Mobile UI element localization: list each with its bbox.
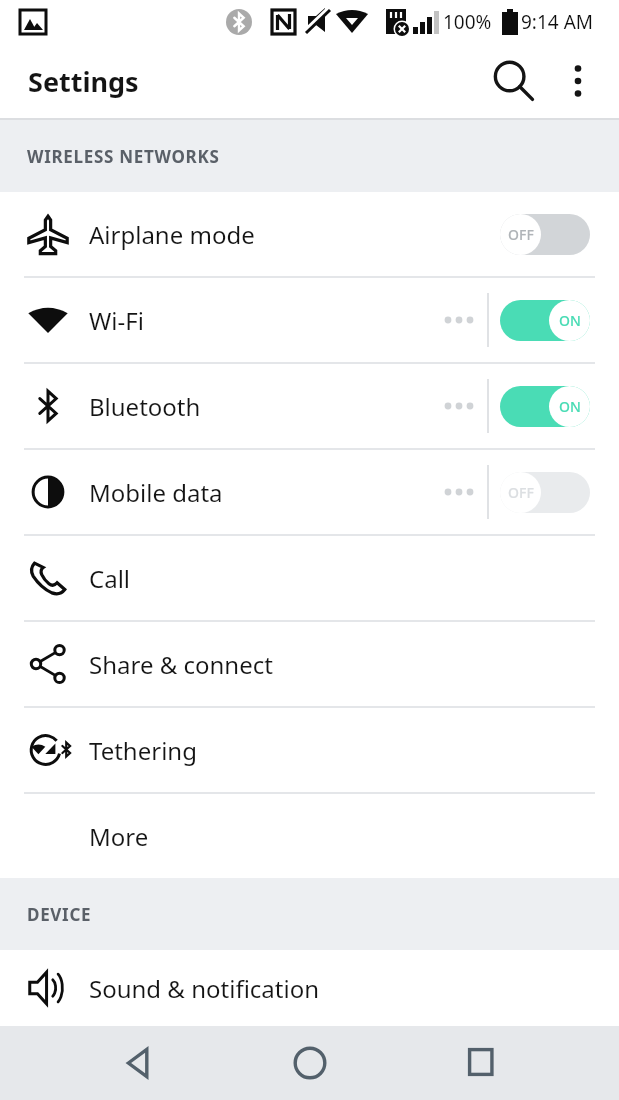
button[interactable]: More (0, 794, 619, 878)
staticText: Wi-Fi (89, 304, 144, 337)
staticText: OFF (508, 225, 534, 244)
staticText: Sound & notification (89, 972, 320, 1005)
staticText: Mobile data (89, 476, 223, 509)
staticText: 100% (443, 9, 492, 35)
button[interactable]: Sound & notification (0, 950, 619, 1026)
button[interactable]: Mobile data (0, 450, 619, 534)
button[interactable]: Recent apps (448, 1030, 514, 1096)
button[interactable]: Home (277, 1030, 343, 1096)
button[interactable]: Search (485, 53, 541, 109)
staticText: More (89, 820, 149, 853)
button[interactable]: ON (500, 386, 590, 427)
button[interactable]: ON (500, 300, 590, 341)
staticText: Airplane mode (89, 218, 255, 251)
staticText: Tethering (89, 734, 197, 767)
button[interactable]: OFF (500, 472, 590, 513)
staticText: 9:14 AM (521, 9, 594, 35)
staticText: Bluetooth (89, 390, 201, 423)
button[interactable]: Share & connect (0, 622, 619, 706)
button[interactable]: Tethering (0, 708, 619, 792)
staticText: Call (89, 562, 131, 595)
staticText: Settings (28, 63, 139, 100)
button[interactable]: Back (105, 1030, 171, 1096)
button[interactable]: OFF (500, 214, 590, 255)
staticText: WIRELESS NETWORKS (27, 145, 220, 168)
button[interactable]: Bluetooth (0, 364, 619, 448)
button[interactable]: Airplane mode (0, 192, 619, 276)
button[interactable]: Wi-Fi (0, 278, 619, 362)
staticText: ON (559, 397, 581, 416)
button[interactable]: Call (0, 536, 619, 620)
staticText: OFF (508, 483, 534, 502)
button[interactable]: More options (553, 56, 603, 106)
staticText: ON (559, 311, 581, 330)
staticText: DEVICE (27, 903, 92, 926)
staticText: Share & connect (89, 648, 273, 681)
